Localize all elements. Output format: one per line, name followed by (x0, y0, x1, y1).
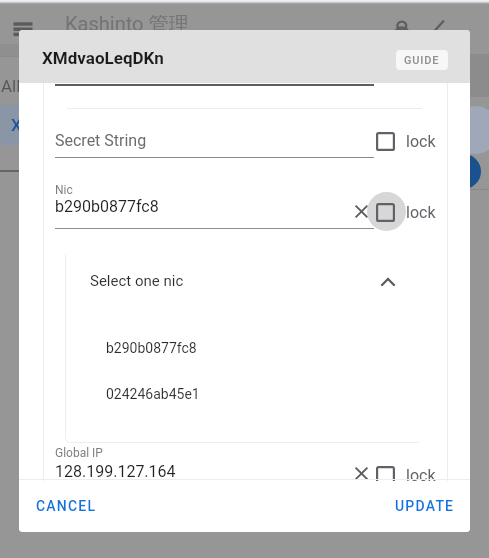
button[interactable]: Select one nic (66, 250, 423, 311)
staticText: Kashinto 管理 (65, 12, 189, 37)
staticText: All (1, 76, 21, 96)
staticText: Select one nic (90, 272, 184, 290)
staticText: Nic (55, 183, 73, 197)
staticText: lock (406, 203, 436, 222)
staticText: b290b0877fc8 (106, 340, 197, 356)
button[interactable]: lock (369, 121, 459, 161)
staticText: X (11, 115, 22, 135)
staticText: Global IP (55, 446, 103, 460)
button[interactable]: lock (369, 192, 459, 232)
button[interactable]: b290b0877fc8 (66, 325, 423, 371)
staticText: CANCEL (36, 498, 97, 514)
button[interactable]: UPDATE (387, 489, 462, 523)
staticText: lock (406, 132, 436, 151)
staticText: 024246ab45e1 (106, 386, 200, 402)
button[interactable]: Clear (351, 201, 372, 222)
button[interactable]: 024246ab45e1 (66, 371, 423, 417)
button[interactable]: Clear (351, 463, 372, 481)
staticText: 128.199.127.164 (55, 462, 176, 481)
button[interactable]: lock (369, 455, 459, 481)
staticText: GUIDE (404, 54, 440, 67)
staticText: UPDATE (395, 498, 455, 514)
button[interactable]: GUIDE (396, 50, 448, 70)
staticText: Secret String (55, 131, 147, 150)
staticText: lock (406, 466, 436, 481)
staticText: b290b0877fc8 (55, 197, 159, 216)
staticText: XMdvaoLeqDKn (42, 48, 164, 68)
other: Collapse (374, 267, 402, 295)
button[interactable]: CANCEL (29, 489, 104, 523)
